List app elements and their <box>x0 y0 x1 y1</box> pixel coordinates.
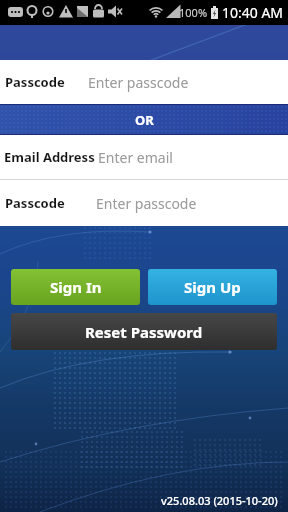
button[interactable]: Sign Up <box>148 269 277 305</box>
button[interactable]: Reset Password <box>11 313 277 350</box>
button[interactable]: Email Address <box>0 135 288 179</box>
staticText: v25.08.03 (2015-10-20) <box>161 493 278 508</box>
staticText: Email Address <box>4 148 95 166</box>
staticText: Enter email <box>98 148 173 167</box>
staticText: Enter passcode <box>88 73 189 92</box>
staticText: 10:40 AM <box>222 3 284 22</box>
staticText: Sign In <box>50 277 102 297</box>
button[interactable]: Passcode <box>0 60 288 104</box>
button[interactable]: Passcode <box>0 180 288 226</box>
staticText: Enter passcode <box>96 194 197 213</box>
button[interactable]: Sign In <box>11 269 140 305</box>
staticText: Passcode <box>5 194 65 212</box>
staticText: Sign Up <box>184 277 241 297</box>
staticText: Reset Password <box>85 322 203 342</box>
staticText: Passcode <box>5 73 65 91</box>
staticText: 100% <box>179 5 208 20</box>
staticText: OR <box>135 111 154 129</box>
